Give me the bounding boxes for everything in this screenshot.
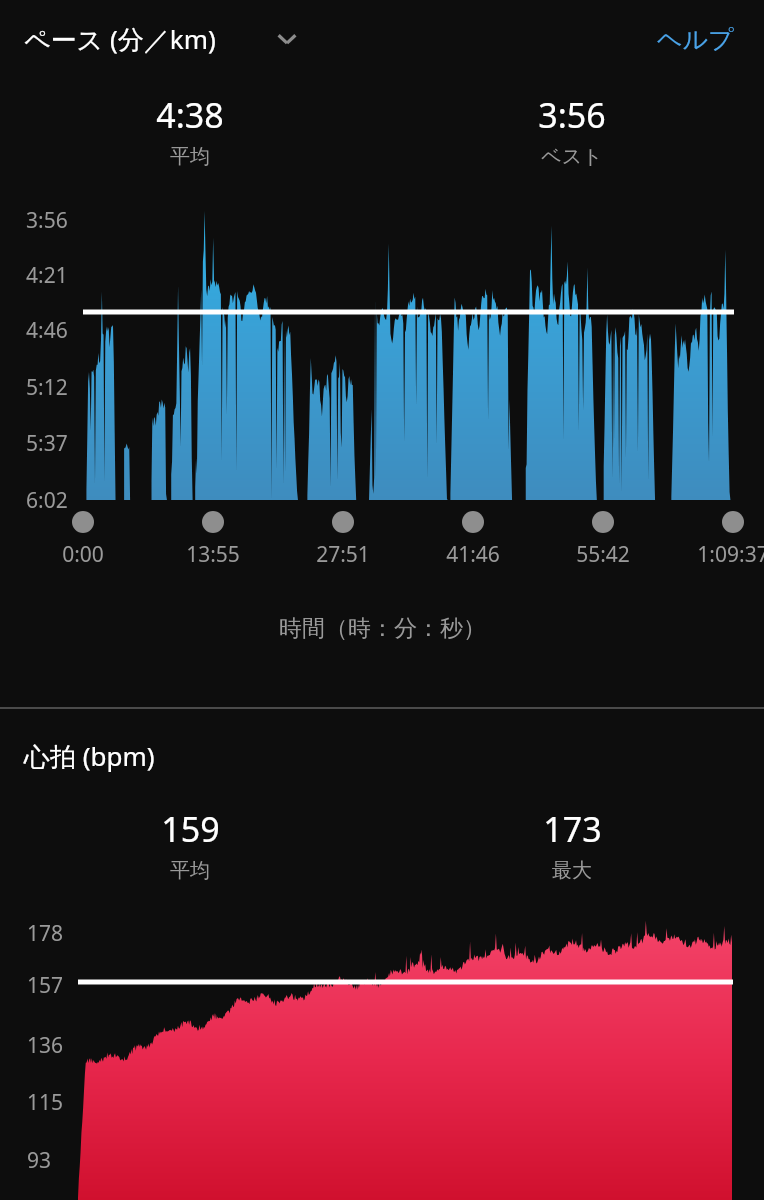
staticText: 55:42: [543, 540, 663, 569]
staticText: 心拍 (bpm): [24, 738, 155, 774]
staticText: 3:56: [538, 92, 606, 138]
staticText: 157: [26, 971, 63, 1000]
staticText: 93: [26, 1146, 51, 1175]
staticText: 6:02: [26, 486, 68, 515]
staticText: 平均: [170, 144, 210, 169]
staticText: 4:38: [156, 92, 224, 138]
staticText: 0:00: [23, 540, 143, 569]
button[interactable]: 173: [492, 806, 652, 883]
staticText: ヘルプ: [657, 24, 734, 55]
button[interactable]: ペース (分／km): [24, 21, 302, 57]
staticText: 173: [543, 806, 602, 852]
staticText: 136: [26, 1031, 63, 1060]
button[interactable]: ヘルプ: [657, 24, 764, 55]
staticText: 時間（時：分：秒）: [279, 614, 486, 643]
staticText: 4:46: [26, 316, 68, 345]
staticText: 5:12: [26, 373, 68, 402]
button[interactable]: 3:56: [492, 92, 652, 169]
staticText: 27:51: [283, 540, 403, 569]
staticText: 平均: [170, 858, 210, 883]
staticText: 最大: [552, 858, 592, 883]
staticText: 4:21: [26, 261, 68, 290]
staticText: 1:09:37: [673, 540, 764, 569]
staticText: 159: [161, 806, 220, 852]
staticText: 5:37: [26, 429, 68, 458]
staticText: ベスト: [541, 144, 603, 169]
staticText: 115: [26, 1088, 63, 1117]
staticText: 13:55: [153, 540, 273, 569]
staticText: 41:46: [413, 540, 533, 569]
staticText: 3:56: [26, 206, 68, 235]
button[interactable]: 心拍 (bpm): [24, 738, 155, 774]
staticText: 178: [26, 919, 63, 948]
other: Change metric: [272, 24, 302, 54]
staticText: ペース (分／km): [24, 21, 216, 57]
button[interactable]: 159: [110, 806, 270, 883]
button[interactable]: 4:38: [110, 92, 270, 169]
